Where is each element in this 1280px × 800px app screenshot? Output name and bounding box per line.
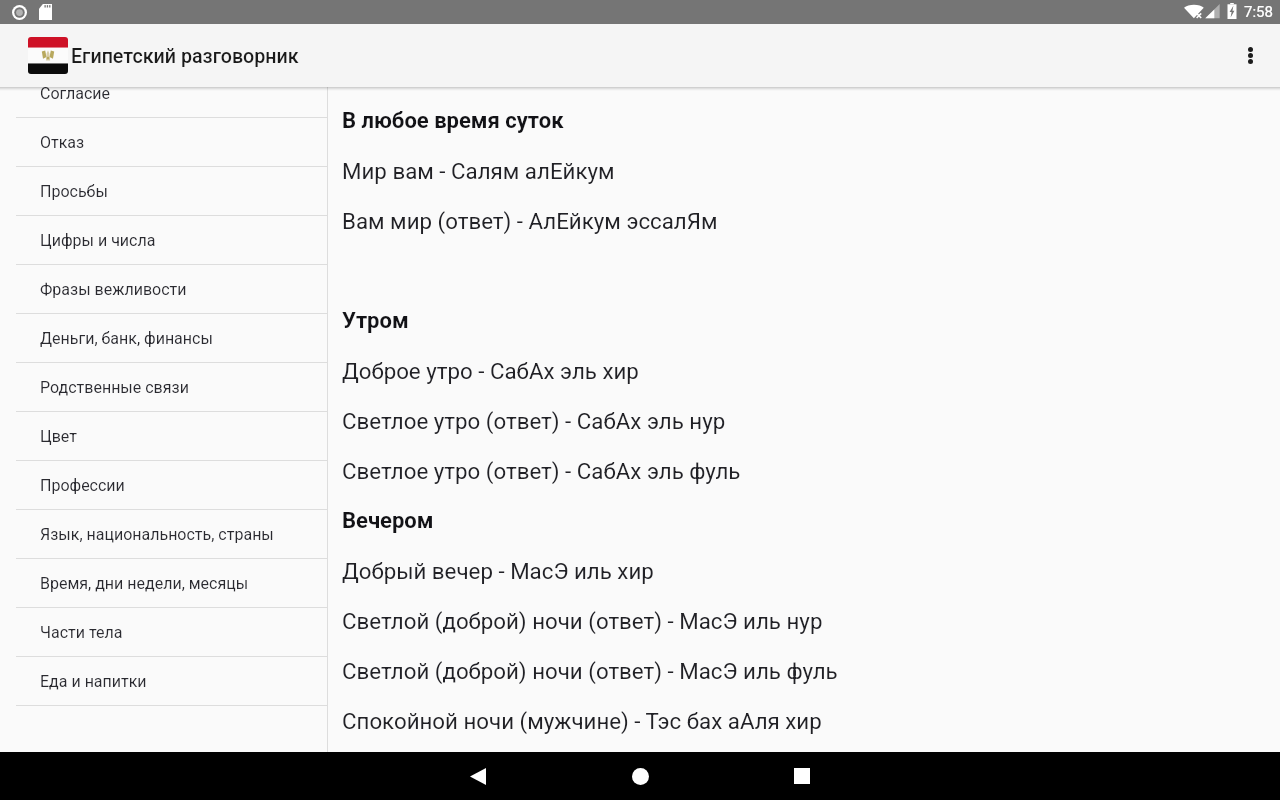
staticText: Цифры и числа — [40, 231, 156, 250]
staticText: Утром — [342, 308, 409, 334]
staticText: Еда и напитки — [40, 672, 147, 691]
staticText: Отказ — [40, 133, 85, 152]
staticText: Мир вам - Салям алЕйкум — [342, 158, 615, 184]
button[interactable]: Язык, национальность, страны — [0, 510, 327, 559]
staticText: Цвет — [40, 427, 77, 446]
staticText: Части тела — [40, 623, 123, 642]
staticText: Вечером — [342, 508, 434, 534]
button[interactable]: Деньги, банк, финансы — [0, 314, 327, 363]
staticText: В любое время суток — [342, 108, 564, 134]
staticText: Деньги, банк, финансы — [40, 329, 213, 348]
button[interactable]: More options — [1226, 24, 1274, 87]
staticText: Светлой (доброй) ночи (ответ) - МасЭ иль… — [342, 658, 838, 684]
button[interactable]: Профессии — [0, 461, 327, 510]
staticText: Профессии — [40, 476, 125, 495]
button[interactable]: Просьбы — [0, 167, 327, 216]
staticText: Согласие — [40, 87, 110, 103]
staticText: Вам мир (ответ) - АлЕйкум эссалЯм — [342, 208, 718, 234]
button[interactable]: Время, дни недели, месяцы — [0, 559, 327, 608]
staticText: Просьбы — [40, 182, 108, 201]
staticText: 7:58 — [1244, 3, 1273, 21]
staticText: Светлой (доброй) ночи (ответ) - МасЭ иль… — [342, 608, 823, 634]
button[interactable]: Фразы вежливости — [0, 265, 327, 314]
button[interactable]: Home — [610, 752, 670, 800]
staticText: Светлое утро (ответ) - СабАх эль фуль — [342, 458, 741, 484]
button[interactable]: Recent apps — [772, 752, 832, 800]
button[interactable]: Еда и напитки — [0, 657, 327, 706]
staticText: Доброе утро - СабАх эль хир — [342, 358, 639, 384]
staticText: Время, дни недели, месяцы — [40, 574, 249, 593]
button[interactable]: Родственные связи — [0, 363, 327, 412]
staticText: Египетский разговорник — [71, 45, 299, 68]
button[interactable]: Отказ — [0, 118, 327, 167]
staticText: Добрый вечер - МасЭ иль хир — [342, 558, 654, 584]
staticText: Фразы вежливости — [40, 280, 187, 299]
button[interactable]: Части тела — [0, 608, 327, 657]
staticText: Спокойной ночи (мужчине) - Тэс бах аАля … — [342, 708, 822, 734]
staticText: Родственные связи — [40, 378, 189, 397]
button[interactable]: Цвет — [0, 412, 327, 461]
staticText: Язык, национальность, страны — [40, 525, 274, 544]
staticText: Светлое утро (ответ) - СабАх эль нур — [342, 408, 726, 434]
button[interactable]: Цифры и числа — [0, 216, 327, 265]
button[interactable]: Согласие — [0, 87, 327, 118]
button[interactable]: Back — [448, 752, 508, 800]
